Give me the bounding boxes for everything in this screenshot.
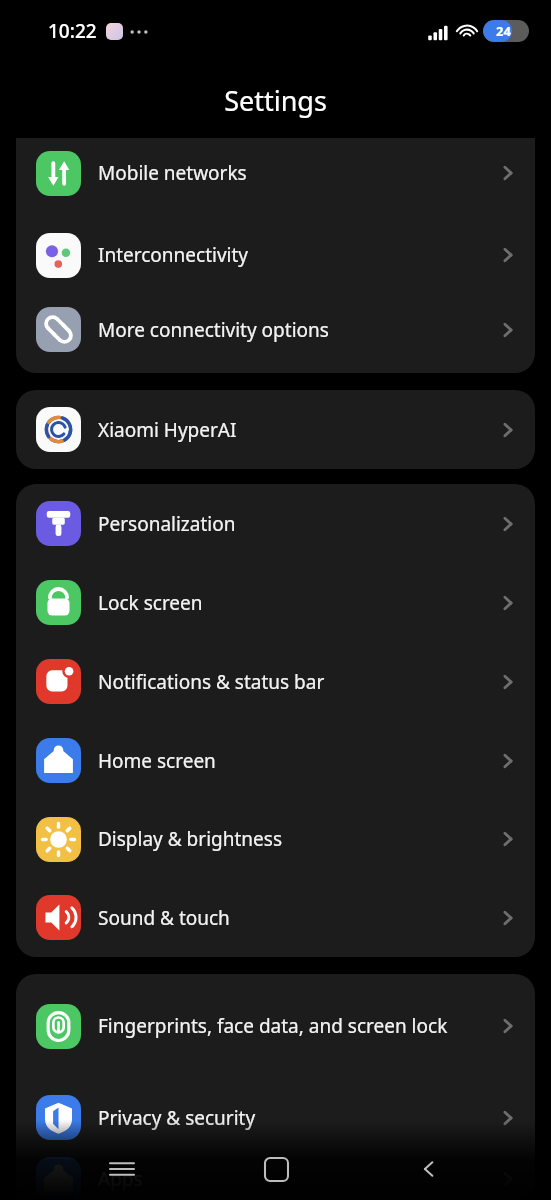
staticText: Apps: [98, 1166, 495, 1192]
button[interactable]: Interconnectivity: [16, 216, 535, 294]
staticText: Personalization: [98, 511, 495, 537]
staticText: Notifications & status bar: [98, 669, 495, 695]
button[interactable]: Fingerprints, face data, and screen lock: [16, 974, 535, 1078]
staticText: 24: [496, 22, 511, 40]
button[interactable]: Notifications & status bar: [16, 642, 535, 721]
button[interactable]: Sound & touch: [16, 878, 535, 957]
button[interactable]: More connectivity options: [16, 294, 535, 365]
staticText: More connectivity options: [98, 317, 495, 343]
staticText: Interconnectivity: [98, 242, 495, 268]
button[interactable]: Display & brightness: [16, 800, 535, 878]
button[interactable]: Personalization: [16, 484, 535, 563]
button[interactable]: Recent apps: [91, 1138, 153, 1200]
button[interactable]: Home screen: [16, 721, 535, 800]
staticText: Fingerprints, face data, and screen lock: [98, 1013, 495, 1039]
button[interactable]: Lock screen: [16, 563, 535, 642]
staticText: Sound & touch: [98, 905, 495, 931]
button[interactable]: Xiaomi HyperAI: [16, 390, 535, 469]
button[interactable]: Apps: [16, 1157, 535, 1200]
staticText: 10:22: [48, 18, 97, 44]
button[interactable]: Back: [398, 1138, 460, 1200]
staticText: Xiaomi HyperAI: [98, 417, 495, 443]
button[interactable]: Privacy & security: [16, 1078, 535, 1157]
staticText: Home screen: [98, 748, 495, 774]
button[interactable]: Mobile networks: [16, 138, 535, 216]
staticText: Settings: [224, 82, 327, 119]
button[interactable]: Home: [245, 1138, 307, 1200]
staticText: Mobile networks: [98, 160, 495, 186]
staticText: Lock screen: [98, 590, 495, 616]
staticText: Privacy & security: [98, 1105, 495, 1131]
staticText: Display & brightness: [98, 826, 495, 852]
